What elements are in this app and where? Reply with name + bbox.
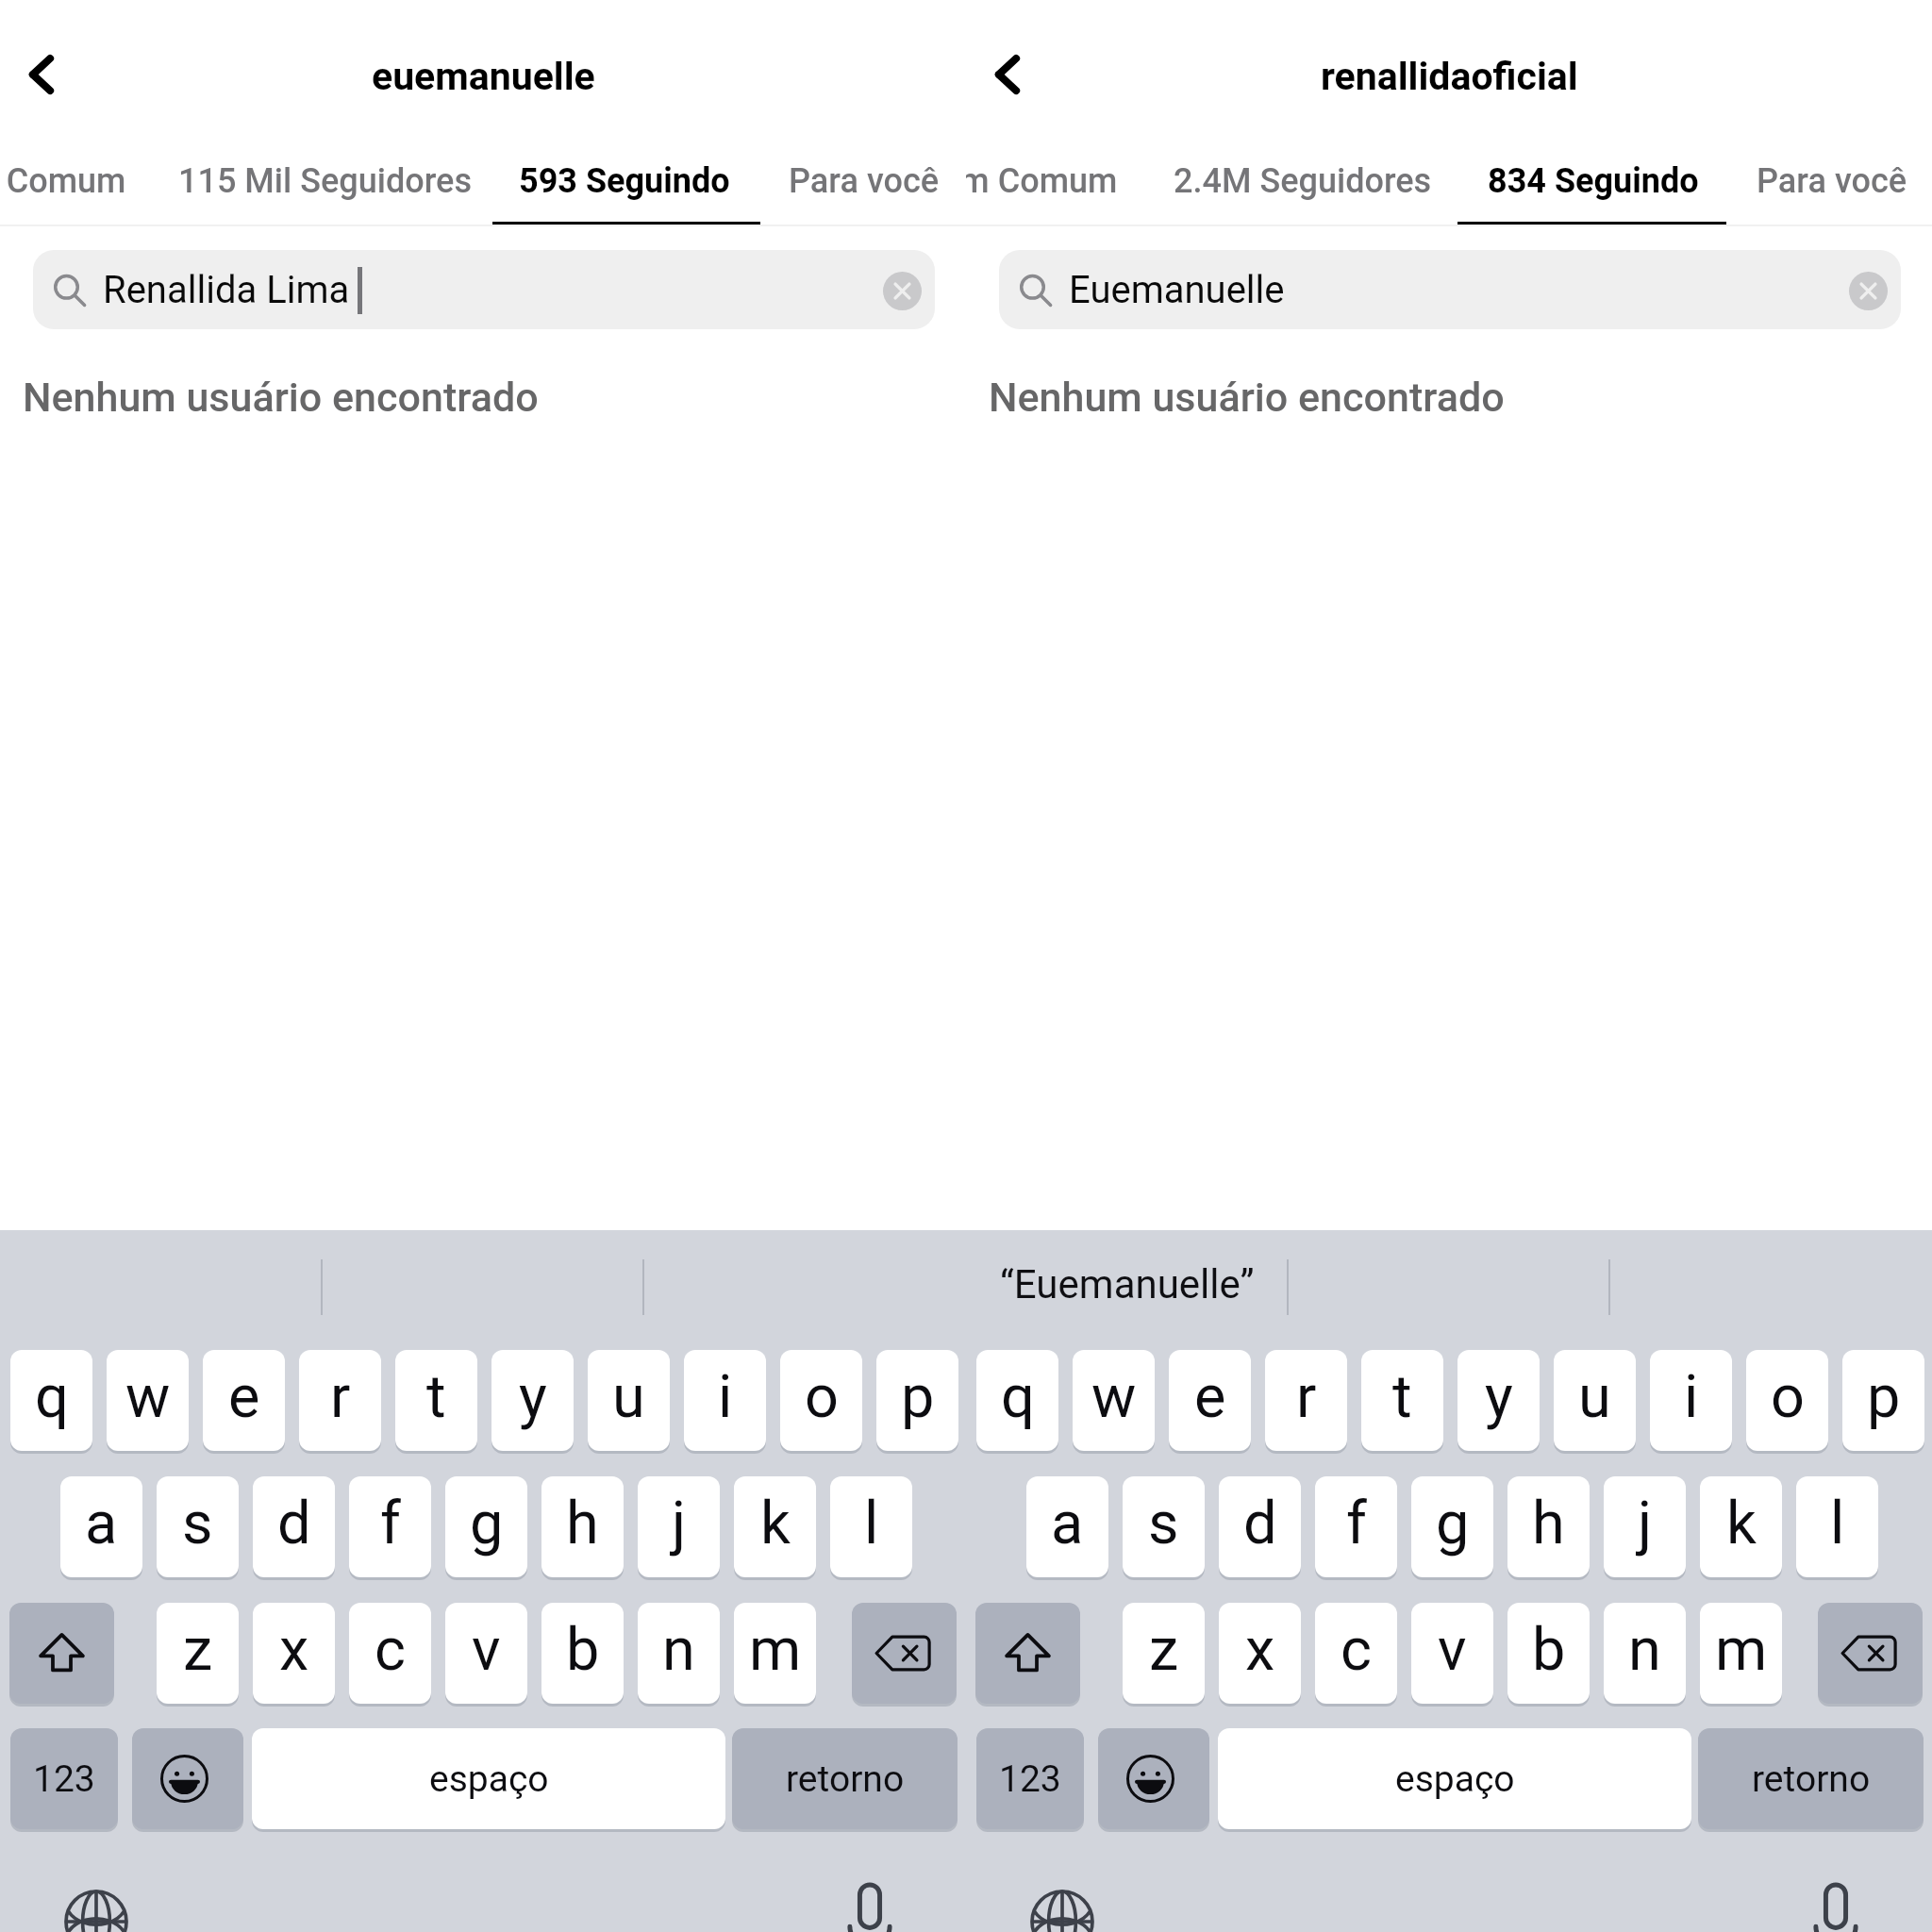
staticText: q	[1001, 1362, 1035, 1432]
staticText: “Euemanuelle”	[1000, 1261, 1255, 1307]
button[interactable]: p	[876, 1350, 958, 1451]
button[interactable]: s	[1123, 1476, 1205, 1577]
button[interactable]: e	[1169, 1350, 1251, 1451]
staticText: q	[35, 1362, 69, 1432]
button[interactable]: Backspace	[1818, 1603, 1923, 1704]
button[interactable]: g	[1411, 1476, 1493, 1577]
button[interactable]: 115 Mil Seguidores	[154, 140, 491, 223]
staticText: retorno	[786, 1757, 905, 1801]
button[interactable]: o	[1746, 1350, 1828, 1451]
button[interactable]: k	[734, 1476, 816, 1577]
button[interactable]: s	[157, 1476, 239, 1577]
button[interactable]: f	[1315, 1476, 1397, 1577]
button[interactable]: a	[1026, 1476, 1108, 1577]
staticText: renallidaoficial	[1321, 54, 1578, 99]
button[interactable]: o	[780, 1350, 862, 1451]
button[interactable]: h	[541, 1476, 624, 1577]
button[interactable]: Backspace	[852, 1603, 957, 1704]
button[interactable]: j	[1604, 1476, 1686, 1577]
button[interactable]: x	[1219, 1603, 1301, 1704]
button[interactable]: Renallida Lima	[33, 250, 935, 329]
staticText: retorno	[1752, 1757, 1871, 1801]
button[interactable]: x	[253, 1603, 335, 1704]
staticText: Em Comum	[966, 161, 1118, 201]
staticText: x	[1245, 1615, 1275, 1685]
button[interactable]: b	[1507, 1603, 1590, 1704]
button[interactable]: Shift	[9, 1603, 114, 1704]
button[interactable]: Para você	[764, 140, 960, 223]
button[interactable]: u	[588, 1350, 670, 1451]
button[interactable]: z	[1123, 1603, 1205, 1704]
staticText: y	[1485, 1362, 1513, 1432]
button[interactable]: v	[445, 1603, 527, 1704]
button[interactable]: Back	[966, 32, 1050, 117]
button[interactable]: d	[1219, 1476, 1301, 1577]
button[interactable]: v	[1411, 1603, 1493, 1704]
button[interactable]: u	[1554, 1350, 1636, 1451]
button[interactable]: y	[491, 1350, 574, 1451]
button[interactable]: 2.4M Seguidores	[1149, 140, 1460, 223]
staticText: z	[183, 1615, 213, 1685]
button[interactable]: 834 Seguindo	[1463, 140, 1727, 223]
staticText: n	[1628, 1615, 1661, 1685]
button[interactable]: n	[638, 1603, 720, 1704]
staticText: 593 Seguindo	[519, 161, 730, 201]
button[interactable]: c	[349, 1603, 431, 1704]
staticText: Em Comum	[0, 161, 126, 201]
button[interactable]: r	[299, 1350, 381, 1451]
button[interactable]: Next keyboard	[55, 1858, 142, 1932]
staticText: o	[1771, 1362, 1805, 1432]
staticText: a	[1051, 1489, 1084, 1558]
button[interactable]: m	[1700, 1603, 1782, 1704]
button[interactable]: espaço	[1218, 1728, 1691, 1829]
staticText: f	[380, 1489, 401, 1558]
button[interactable]: p	[1842, 1350, 1924, 1451]
button[interactable]: e	[203, 1350, 285, 1451]
button[interactable]: w	[1073, 1350, 1155, 1451]
button[interactable]: m	[734, 1603, 816, 1704]
staticText: 123	[999, 1757, 1061, 1801]
button[interactable]: espaço	[252, 1728, 725, 1829]
button[interactable]: b	[541, 1603, 624, 1704]
button[interactable]: 123	[976, 1728, 1084, 1829]
button[interactable]: Clear search	[1849, 272, 1888, 310]
button[interactable]: t	[1361, 1350, 1443, 1451]
button[interactable]: Clear search	[883, 272, 922, 310]
button[interactable]: Next keyboard	[1021, 1858, 1108, 1932]
button[interactable]: retorno	[732, 1728, 958, 1829]
button[interactable]: y	[1457, 1350, 1540, 1451]
button[interactable]: r	[1265, 1350, 1347, 1451]
button[interactable]: Em Comum	[966, 140, 1147, 223]
button[interactable]: Dictation	[1792, 1858, 1879, 1932]
button[interactable]: g	[445, 1476, 527, 1577]
button[interactable]: q	[976, 1350, 1058, 1451]
button[interactable]: i	[684, 1350, 766, 1451]
button[interactable]: Emoji keyboard	[1098, 1728, 1209, 1829]
button[interactable]: 123	[10, 1728, 118, 1829]
button[interactable]: 593 Seguindo	[494, 140, 758, 223]
button[interactable]: l	[830, 1476, 912, 1577]
button[interactable]: Em Comum	[0, 140, 156, 223]
button[interactable]: c	[1315, 1603, 1397, 1704]
button[interactable]: z	[157, 1603, 239, 1704]
button[interactable]: k	[1700, 1476, 1782, 1577]
button[interactable]: d	[253, 1476, 335, 1577]
button[interactable]: i	[1650, 1350, 1732, 1451]
button[interactable]: Para você	[1732, 140, 1928, 223]
button[interactable]: q	[10, 1350, 92, 1451]
button[interactable]: Emoji keyboard	[132, 1728, 243, 1829]
staticText: 834 Seguindo	[1488, 161, 1699, 201]
button[interactable]: j	[638, 1476, 720, 1577]
button[interactable]: Euemanuelle	[999, 250, 1901, 329]
button[interactable]: Back	[0, 32, 84, 117]
button[interactable]: w	[107, 1350, 189, 1451]
button[interactable]: t	[395, 1350, 477, 1451]
button[interactable]: h	[1507, 1476, 1590, 1577]
button[interactable]: Shift	[975, 1603, 1080, 1704]
button[interactable]: n	[1604, 1603, 1686, 1704]
button[interactable]: l	[1796, 1476, 1878, 1577]
button[interactable]: retorno	[1698, 1728, 1924, 1829]
button[interactable]: Dictation	[826, 1858, 913, 1932]
button[interactable]: a	[60, 1476, 142, 1577]
button[interactable]: f	[349, 1476, 431, 1577]
